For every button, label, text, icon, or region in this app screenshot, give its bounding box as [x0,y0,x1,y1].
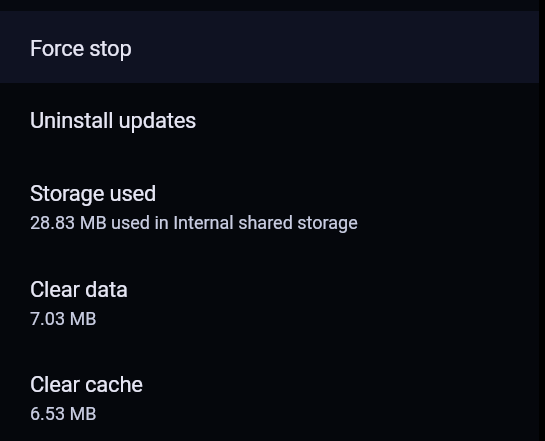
button[interactable]: Force stop [0,11,545,83]
staticText: Clear cache [30,372,143,398]
staticText: 6.53 MB [30,403,97,424]
staticText: 28.83 MB used in Internal shared storage [30,212,358,233]
staticText: 7.03 MB [30,308,97,329]
button[interactable]: Storage used [0,155,545,251]
button[interactable]: Uninstall updates [0,83,545,155]
staticText: Storage used [30,181,157,207]
button[interactable]: Clear cache [0,346,545,441]
staticText: Uninstall updates [30,108,197,134]
staticText: Force stop [30,36,132,62]
staticText: Clear data [30,277,128,303]
button[interactable]: Clear data [0,251,545,346]
